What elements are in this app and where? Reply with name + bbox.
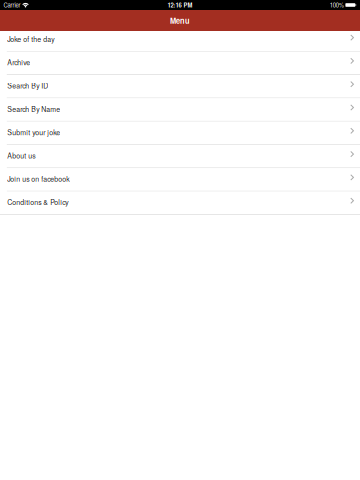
staticText: Carrier (3, 1, 20, 9)
staticText: About us (7, 150, 35, 160)
staticText: 12:16 PM (167, 1, 192, 9)
button[interactable]: Search By Name (0, 98, 360, 122)
button[interactable]: Join us on facebook (0, 168, 360, 191)
staticText: Search By Name (7, 104, 60, 114)
staticText: Menu (170, 15, 190, 26)
button[interactable]: Conditions & Policy (0, 191, 360, 215)
button[interactable]: Archive (0, 52, 360, 75)
staticText: Search By ID (7, 81, 48, 90)
button[interactable]: Joke of the day (0, 31, 360, 52)
staticText: 100% (330, 1, 344, 9)
staticText: Submit your joke (7, 127, 60, 137)
staticText: Join us on facebook (7, 174, 69, 184)
button[interactable]: Submit your joke (0, 122, 360, 145)
staticText: Joke of the day (7, 34, 54, 44)
button[interactable]: About us (0, 145, 360, 168)
button[interactable]: Search By ID (0, 75, 360, 98)
staticText: Archive (7, 57, 30, 67)
staticText: Conditions & Policy (7, 197, 68, 207)
